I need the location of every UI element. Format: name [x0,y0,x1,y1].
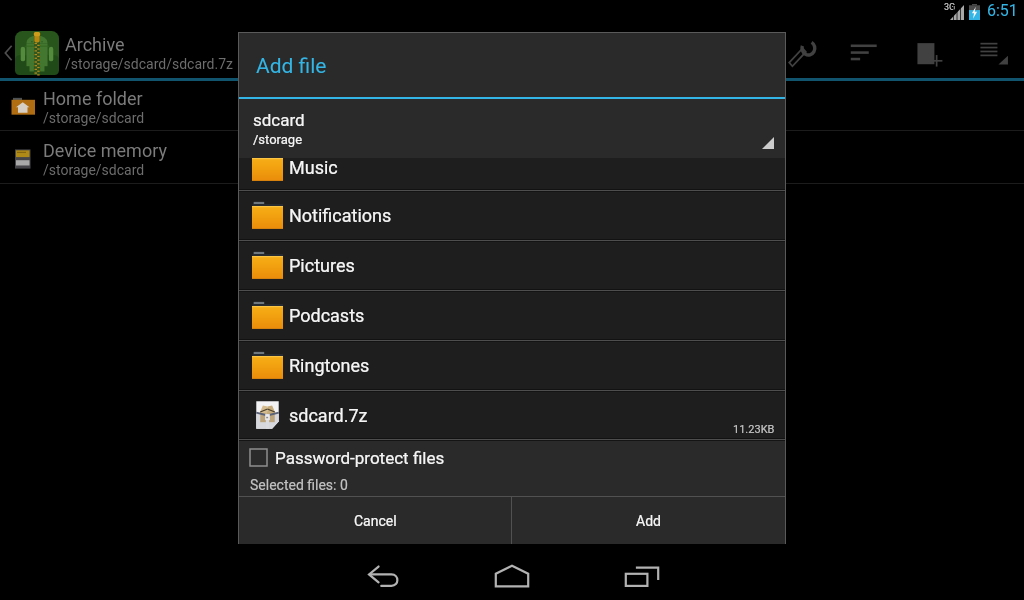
button[interactable]: sdcard.7z [239,392,785,438]
button[interactable]: Ringtones [239,342,785,389]
staticText: Podcasts [289,305,365,326]
staticText: Ringtones [289,355,370,376]
staticText: 3G [944,2,956,13]
button[interactable]: Music [239,158,785,183]
staticText: Device memory [43,140,167,161]
staticText: Add file [256,54,327,79]
button[interactable]: Home folder [0,83,1024,131]
staticText: Selected files: 0 [250,477,348,493]
button[interactable]: Tools [786,36,818,70]
staticText: /storage/sdcard [43,162,145,178]
staticText: sdcard.7z [289,405,368,426]
button[interactable]: Recent apps [608,552,676,600]
staticText: Add [636,513,661,529]
button[interactable]: Device memory [0,135,1024,183]
button[interactable]: Home [478,552,546,600]
button[interactable]: Sort [845,36,881,70]
staticText: 11.23KB [733,423,775,436]
button[interactable]: Cancel [239,497,511,544]
staticText: 6:51 [987,1,1018,20]
button[interactable]: Back [350,552,418,600]
button[interactable]: Add [512,497,785,544]
staticText: Home folder [43,88,143,109]
button[interactable]: Podcasts [239,292,785,339]
button[interactable]: Pictures [239,242,785,289]
staticText: /storage [253,132,303,147]
staticText: Pictures [289,255,355,276]
staticText: Notifications [289,205,392,226]
button[interactable]: Navigate up [0,26,236,80]
staticText: Password-protect files [275,448,445,468]
button[interactable]: sdcard [239,99,785,158]
staticText: Cancel [354,513,397,529]
button[interactable]: Notifications [239,192,785,239]
button[interactable]: Password-protect files [239,441,785,474]
button[interactable]: New file [912,36,944,70]
button[interactable]: More options [976,36,1010,70]
staticText: Music [289,158,338,178]
staticText: sdcard [253,110,305,130]
staticText: Archive [65,34,125,55]
staticText: /storage/sdcard [43,110,145,126]
staticText: /storage/sdcard/sdcard.7z [65,56,234,72]
